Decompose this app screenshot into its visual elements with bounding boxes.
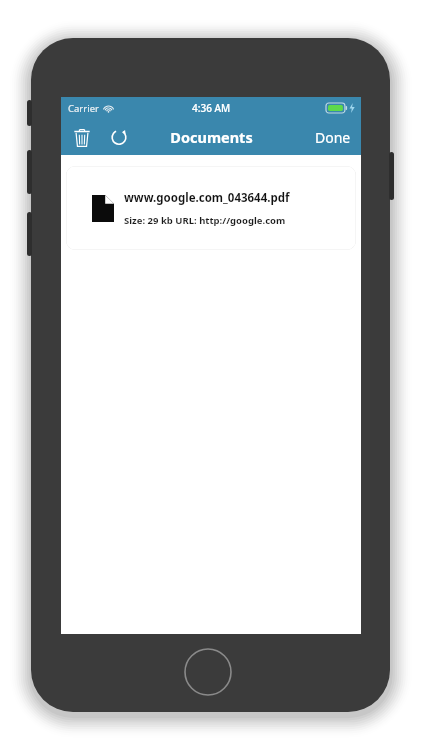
staticText: Done — [315, 128, 351, 147]
staticText: Size: 29 kb URL: http://google.com — [124, 214, 286, 227]
staticText: Carrier — [68, 102, 99, 115]
button[interactable]: Delete — [66, 121, 98, 153]
staticText: 4:36 AM — [192, 101, 231, 115]
button[interactable]: www.google.com_043644.pdf — [66, 166, 356, 250]
staticText: Documents — [170, 127, 253, 147]
button[interactable]: Done — [311, 124, 355, 151]
button[interactable]: Refresh — [103, 121, 135, 153]
staticText: www.google.com_043644.pdf — [124, 190, 290, 206]
